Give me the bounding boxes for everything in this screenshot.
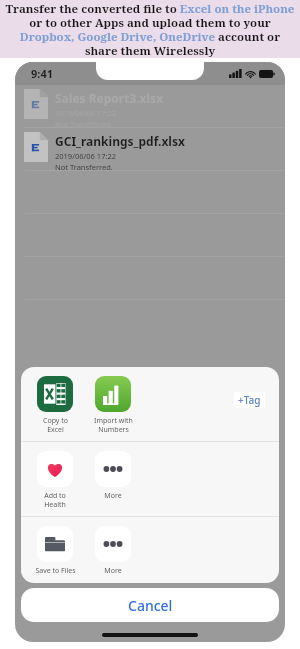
staticText: Copy to Excel [43, 416, 68, 434]
staticText: Cancel [128, 596, 173, 615]
button[interactable]: Save to Files [29, 526, 81, 576]
button[interactable]: GCI_rankings_pdf.xlsx [15, 128, 285, 171]
staticText: Add to Health [44, 491, 66, 509]
staticText: Not Transferred. [55, 119, 113, 128]
staticText: Not Transferred. [55, 162, 113, 171]
button[interactable]: Import with Numbers [87, 376, 139, 434]
staticText: GCI_rankings_pdf.xlsx [55, 133, 185, 149]
other: Import with Numbers [95, 376, 131, 412]
staticText: Save to Files [35, 566, 76, 576]
other: Copy to Excel [37, 376, 73, 412]
button[interactable]: Copy to Excel [29, 376, 81, 434]
button[interactable]: More [87, 451, 139, 501]
staticText: Import with Numbers [94, 416, 133, 434]
button[interactable]: +Tag [234, 392, 265, 408]
button[interactable]: More [87, 526, 139, 576]
staticText: 9:41 [31, 66, 53, 81]
staticText: Transfer the converted file to Excel on … [4, 1, 296, 57]
staticText: +Tag [238, 393, 261, 407]
staticText: 2019/06/06 17:22 [55, 151, 117, 161]
button[interactable]: Cancel [21, 588, 279, 622]
staticText: Sales Report3.xlsx [55, 90, 164, 106]
staticText: More [104, 566, 122, 576]
staticText: More [104, 491, 122, 501]
button[interactable]: Add to Health [29, 451, 81, 509]
button[interactable]: Sales Report3.xlsx [15, 85, 285, 128]
